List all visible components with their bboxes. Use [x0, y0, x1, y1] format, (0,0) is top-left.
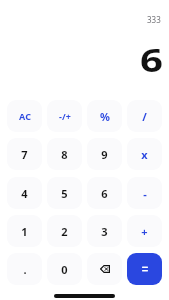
staticText: 3 — [101, 224, 108, 239]
button[interactable]: 6 — [87, 177, 122, 209]
button[interactable]: AC — [7, 100, 42, 132]
staticText: 6 — [140, 38, 164, 82]
staticText: AC — [19, 110, 31, 122]
button[interactable]: 8 — [47, 138, 82, 170]
button[interactable]: Backspace — [87, 253, 122, 285]
button[interactable]: / — [127, 100, 162, 132]
button[interactable]: % — [87, 100, 122, 132]
staticText: 2 — [61, 224, 68, 239]
button[interactable]: Equals — [127, 253, 162, 285]
staticText: - — [143, 186, 147, 201]
button[interactable]: 4 — [7, 177, 42, 209]
staticText: 4 — [21, 186, 28, 201]
button[interactable]: 5 — [47, 177, 82, 209]
staticText: % — [100, 109, 110, 124]
staticText: 9 — [101, 147, 108, 162]
staticText: 5 — [61, 186, 68, 201]
button[interactable]: - — [127, 177, 162, 209]
staticText: . — [23, 262, 27, 277]
staticText: / — [142, 109, 147, 124]
button[interactable]: 7 — [7, 138, 42, 170]
staticText: x — [141, 147, 148, 162]
staticText: 8 — [61, 147, 68, 162]
staticText: 1 — [21, 224, 28, 239]
staticText: + — [141, 224, 148, 239]
button[interactable]: 1 — [7, 215, 42, 247]
staticText: 7 — [21, 147, 28, 162]
button[interactable]: 3 — [87, 215, 122, 247]
button[interactable]: + — [127, 215, 162, 247]
staticText: -/+ — [59, 110, 71, 122]
button[interactable]: . — [7, 253, 42, 285]
staticText: 333 — [147, 14, 161, 25]
button[interactable]: x — [127, 138, 162, 170]
staticText: 0 — [61, 262, 68, 277]
button[interactable]: -/+ — [47, 100, 82, 132]
staticText: 6 — [101, 186, 108, 201]
button[interactable]: 0 — [47, 253, 82, 285]
button[interactable]: 2 — [47, 215, 82, 247]
button[interactable]: 9 — [87, 138, 122, 170]
